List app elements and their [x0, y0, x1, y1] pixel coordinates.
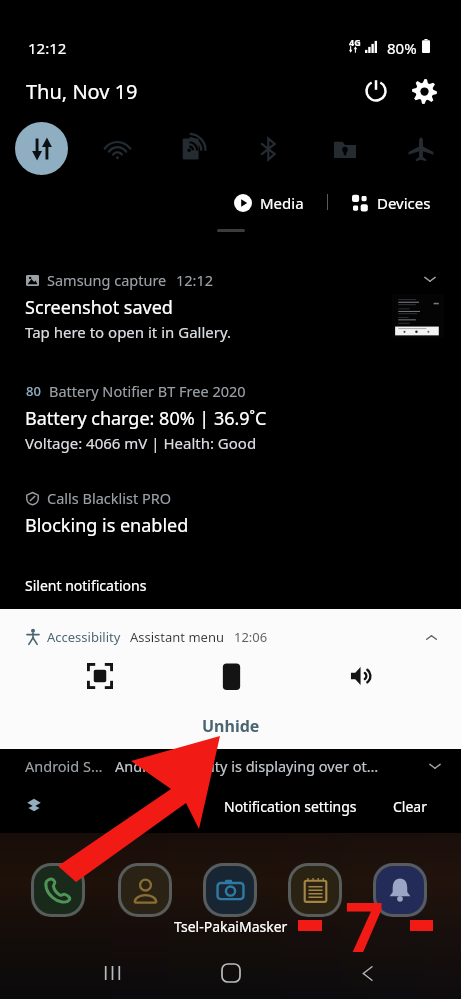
- staticText: 12:12: [176, 270, 214, 290]
- button[interactable]: Notification settings: [216, 791, 365, 822]
- button[interactable]: Unhide: [0, 709, 461, 743]
- staticText: 12:12: [28, 38, 67, 58]
- button[interactable]: Quick setting: [87, 118, 147, 178]
- staticText: Unhide: [202, 715, 260, 737]
- staticText: Calls Blacklist PRO: [47, 488, 172, 508]
- staticText: Assistant menu: [130, 628, 224, 646]
- button[interactable]: App icon: [288, 863, 342, 917]
- button[interactable]: App icon: [31, 863, 85, 917]
- button[interactable]: Quick setting: [11, 118, 71, 178]
- staticText: Thu, Nov 19: [26, 78, 138, 105]
- staticText: Blocking is enabled: [25, 513, 189, 538]
- staticText: Android Security is displaying over ot…: [115, 756, 379, 776]
- button[interactable]: Settings: [403, 70, 445, 112]
- button[interactable]: Screenshot: [78, 654, 122, 698]
- button[interactable]: Notification history: [18, 789, 49, 820]
- button[interactable]: App icon: [373, 863, 427, 917]
- staticText: Tap here to open it in Gallery.: [25, 322, 232, 342]
- staticText: Media: [260, 193, 304, 213]
- button[interactable]: Quick setting: [163, 118, 223, 178]
- staticText: 80: [26, 382, 41, 400]
- button[interactable]: Samsung capture: [0, 258, 461, 350]
- button[interactable]: Quick setting: [314, 118, 374, 178]
- button[interactable]: Clear: [385, 791, 435, 822]
- staticText: 12:06: [234, 628, 268, 646]
- button[interactable]: Calls Blacklist PRO: [0, 482, 461, 544]
- button[interactable]: Power off: [355, 70, 397, 112]
- button[interactable]: Home: [207, 949, 255, 997]
- staticText: Tsel-PakaiMasker: [174, 917, 288, 936]
- staticText: Voltage: 4066 mV | Health: Good: [25, 433, 257, 453]
- staticText: Battery Notifier BT Free 2020: [49, 381, 246, 401]
- staticText: Samsung capture: [47, 270, 167, 290]
- button[interactable]: App icon: [118, 863, 172, 917]
- button[interactable]: App icon: [203, 863, 257, 917]
- staticText: 7: [345, 879, 384, 972]
- button[interactable]: Quick setting: [390, 118, 450, 178]
- staticText: Android S…: [25, 756, 103, 776]
- button[interactable]: Volume: [340, 654, 384, 698]
- button[interactable]: Device: [209, 654, 253, 698]
- button[interactable]: Back: [343, 949, 391, 997]
- staticText: 80%: [387, 38, 417, 58]
- staticText: Battery charge: 80% | 36.9˚C: [25, 406, 267, 431]
- staticText: 4G: [349, 36, 361, 48]
- staticText: Notification settings: [224, 797, 357, 816]
- button[interactable]: Quick setting: [238, 118, 298, 178]
- button[interactable]: 80: [0, 374, 461, 459]
- button[interactable]: Recents: [88, 949, 136, 997]
- staticText: Accessibility: [47, 628, 121, 646]
- staticText: Screenshot saved: [25, 295, 173, 320]
- staticText: Silent notifications: [25, 576, 147, 595]
- staticText: Devices: [377, 193, 431, 213]
- button[interactable]: Devices: [346, 190, 437, 215]
- button[interactable]: Android S…: [0, 749, 461, 782]
- button[interactable]: Media: [228, 190, 310, 215]
- staticText: Clear: [393, 797, 427, 816]
